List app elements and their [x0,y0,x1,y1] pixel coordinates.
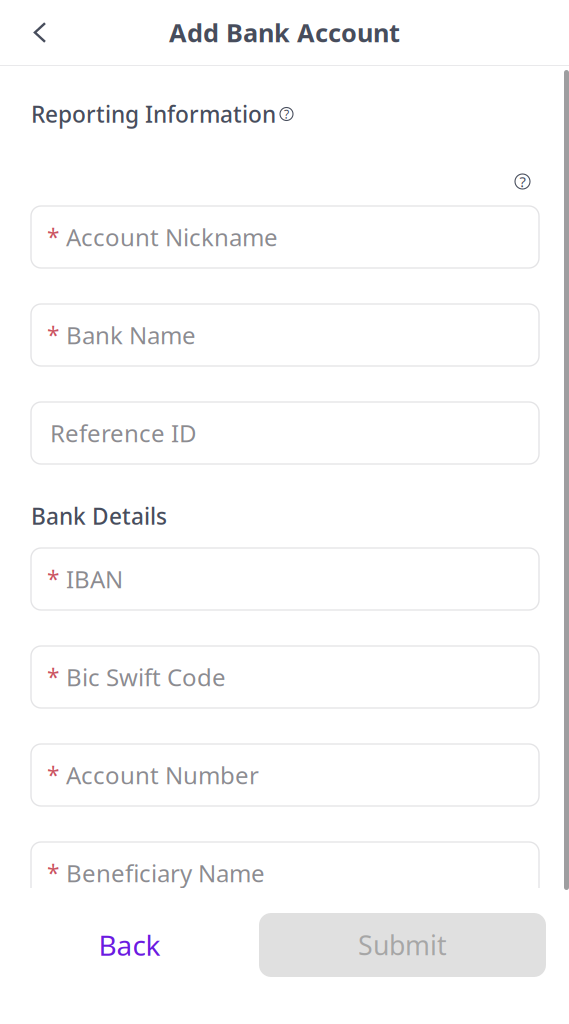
button[interactable]: Submit [259,913,546,977]
button[interactable]: Help [515,174,530,189]
staticText: Account Number [66,759,259,791]
button[interactable]: Back [0,913,259,977]
staticText: * [47,564,59,594]
staticText: Beneficiary Address [66,955,288,987]
staticText: Reference ID [50,417,197,449]
staticText: ? [284,106,289,122]
staticText: * [47,222,59,252]
staticText: Bic Swift Code [66,661,226,693]
staticText: * [47,662,59,692]
staticText: * [47,760,59,790]
staticText: Bank Details [31,501,167,531]
staticText: ? [519,172,525,191]
staticText: * [47,320,59,350]
staticText: Beneficiary Name [66,857,265,889]
button[interactable]: Back [18,10,62,54]
staticText: Bank Name [66,319,196,351]
staticText: * [47,858,59,888]
staticText: Account Nickname [66,221,278,253]
staticText: Add Bank Account [169,16,400,49]
staticText: Back [98,926,160,964]
staticText: Reporting Information [31,99,276,129]
staticText: Submit [358,927,447,963]
staticText: IBAN [66,563,123,595]
